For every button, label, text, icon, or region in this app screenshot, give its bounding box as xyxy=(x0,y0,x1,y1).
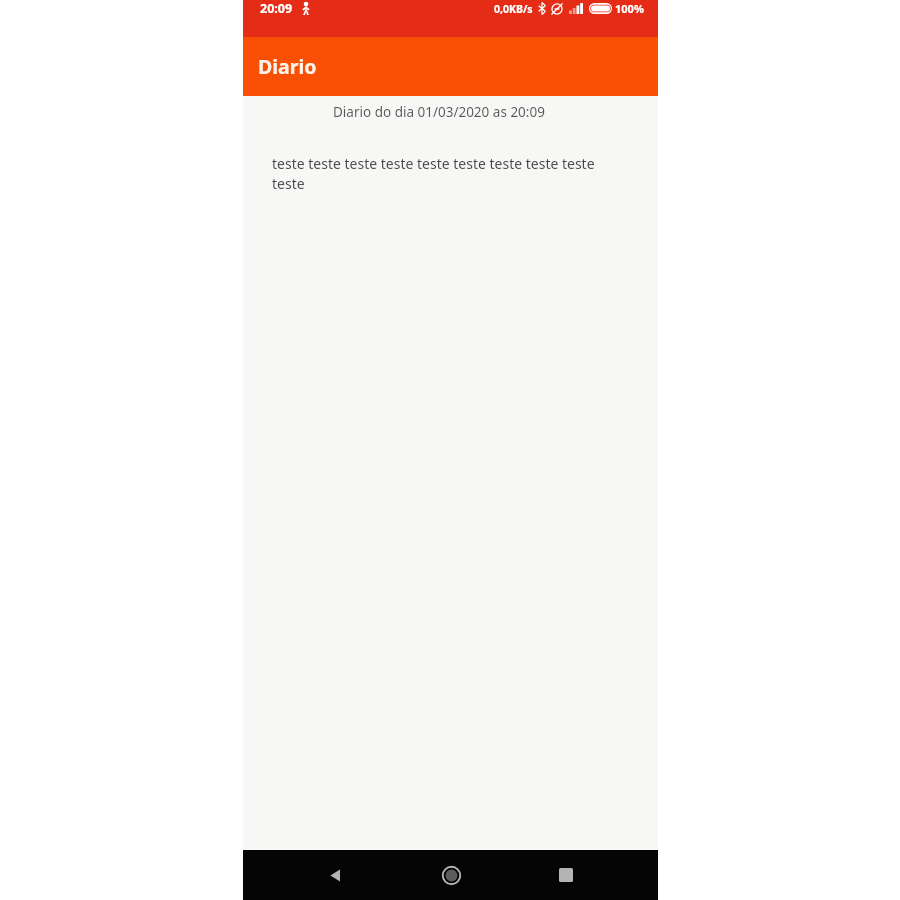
staticText: 100% xyxy=(615,1,644,16)
staticText: Diario xyxy=(258,53,317,80)
button[interactable]: Home xyxy=(427,851,475,899)
staticText: teste teste teste teste teste teste test… xyxy=(272,154,604,193)
staticText: Diario do dia 01/03/2020 as 20:09 xyxy=(333,103,545,121)
staticText: 0,0KB/s xyxy=(494,2,533,16)
staticText: 20:09 xyxy=(260,0,293,17)
button[interactable]: Recent apps xyxy=(542,851,590,899)
button[interactable]: Back xyxy=(311,851,359,899)
